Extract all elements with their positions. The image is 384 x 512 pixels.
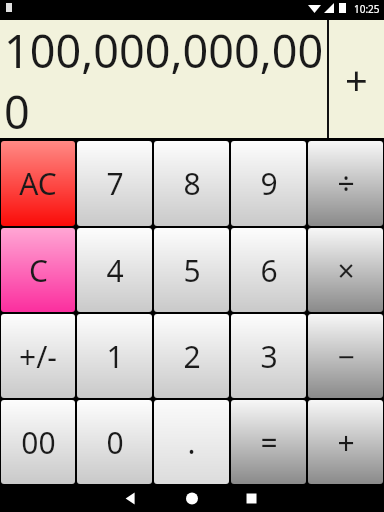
button[interactable]: AC [1, 141, 75, 226]
button[interactable]: C [1, 228, 75, 312]
button[interactable]: 00 [1, 400, 75, 484]
button[interactable]: 1 [77, 314, 152, 398]
staticText: 9 [260, 163, 278, 204]
staticText: 100,000,000,000 [4, 20, 327, 138]
staticText: = [260, 422, 278, 463]
button[interactable]: 5 [154, 228, 229, 312]
staticText: 5 [183, 250, 201, 291]
button[interactable]: 9 [231, 141, 306, 226]
button[interactable]: +/- [1, 314, 75, 398]
button[interactable]: 8 [154, 141, 229, 226]
staticText: 0 [106, 422, 124, 463]
staticText: + [345, 52, 368, 106]
button[interactable]: 2 [154, 314, 229, 398]
staticText: ÷ [337, 163, 355, 204]
staticText: 6 [260, 250, 278, 291]
staticText: + [337, 422, 355, 463]
button[interactable]: 7 [77, 141, 152, 226]
staticText: 1 [106, 336, 124, 377]
button[interactable]: 4 [77, 228, 152, 312]
staticText: 4 [106, 250, 124, 291]
staticText: 3 [260, 336, 278, 377]
staticText: 8 [183, 163, 201, 204]
staticText: 7 [106, 163, 124, 204]
staticText: 2 [183, 336, 201, 377]
button[interactable]: − [308, 314, 383, 398]
button[interactable]: . [154, 400, 229, 484]
button[interactable]: + [308, 400, 383, 484]
button[interactable]: = [231, 400, 306, 484]
button[interactable]: 3 [231, 314, 306, 398]
staticText: 00 [21, 422, 56, 463]
staticText: × [337, 250, 355, 291]
staticText: 10:25 [354, 2, 380, 16]
button[interactable]: 6 [231, 228, 306, 312]
staticText: AC [19, 163, 57, 204]
staticText: C [29, 250, 48, 291]
staticText: . [187, 422, 196, 463]
button[interactable]: × [308, 228, 383, 312]
staticText: − [337, 336, 355, 377]
staticText: +/- [19, 336, 57, 377]
button[interactable]: ÷ [308, 141, 383, 226]
button[interactable]: 0 [77, 400, 152, 484]
